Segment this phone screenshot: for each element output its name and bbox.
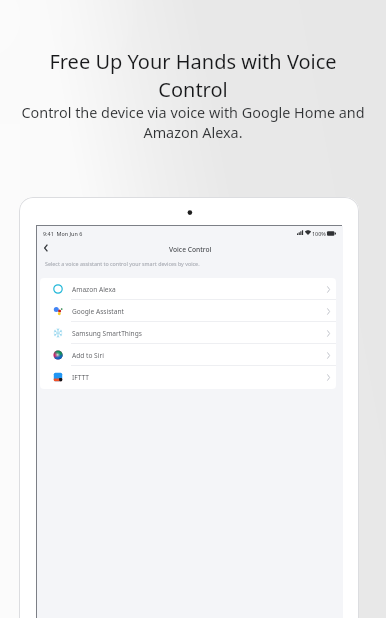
staticText: Free Up Your Hands with Voice Control [0, 48, 386, 102]
button[interactable]: Back [39, 241, 52, 254]
staticText: IFTTT [72, 373, 89, 382]
staticText: Google Assistant [72, 307, 124, 316]
staticText: 100% [312, 230, 326, 237]
staticText: Add to Siri [72, 351, 104, 360]
button[interactable]: Add to Siri [40, 344, 336, 366]
staticText: Voice Control [169, 245, 212, 254]
staticText: Amazon Alexa [72, 285, 116, 294]
staticText: Samsung SmartThings [72, 329, 142, 338]
staticText: Select a voice assistant to control your… [45, 260, 200, 267]
button[interactable]: Amazon Alexa [40, 278, 336, 300]
button[interactable]: Google Assistant [40, 300, 336, 322]
staticText: 9:41 Mon Jun 6 [43, 230, 83, 237]
staticText: Control the device via voice with Google… [0, 103, 386, 142]
button[interactable]: IFTTT [40, 366, 336, 388]
button[interactable]: Samsung SmartThings [40, 322, 336, 344]
